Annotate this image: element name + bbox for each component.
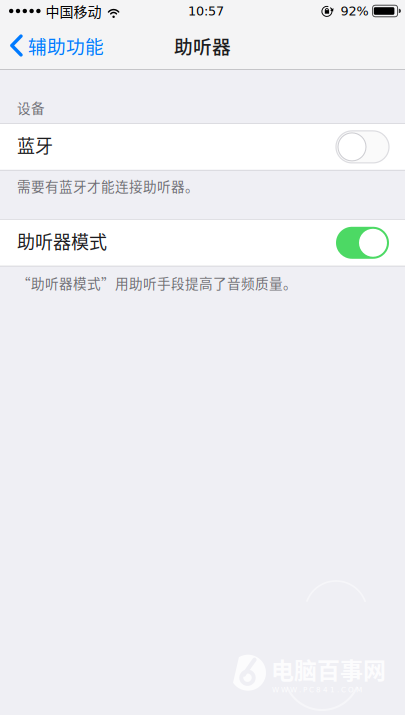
staticText: 助听器 [174, 32, 231, 59]
staticText: 10:57 [188, 4, 224, 18]
button[interactable]: 辅助功能 [0, 23, 112, 67]
staticText: 92% [341, 4, 369, 18]
staticText: 电脑百事网 [271, 652, 386, 686]
staticText: 中国移动 [46, 1, 102, 21]
staticText: 辅助功能 [28, 32, 104, 59]
staticText: 蓝牙 [17, 132, 53, 158]
staticText: 设备 [17, 98, 45, 117]
staticText: 助听器模式 [17, 228, 107, 254]
staticText: W W W . P C 8 4 1 . C O M [272, 686, 362, 694]
staticText: “助听器模式”用助听手段提高了音频质量。 [17, 273, 297, 293]
button[interactable]: 助听器模式 [0, 220, 405, 266]
staticText: 需要有蓝牙才能连接助听器。 [17, 176, 199, 196]
button[interactable]: 蓝牙 [0, 124, 405, 170]
